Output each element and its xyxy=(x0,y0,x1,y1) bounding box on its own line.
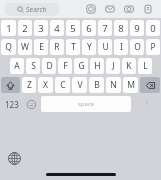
button[interactable]: C xyxy=(55,77,70,93)
button[interactable]: V xyxy=(72,77,87,93)
staticText: B xyxy=(94,79,100,91)
staticText: E xyxy=(39,41,44,53)
button[interactable]: space xyxy=(41,96,131,112)
staticText: 4 xyxy=(54,22,60,35)
staticText: S xyxy=(31,60,36,72)
button[interactable]: 3 xyxy=(34,20,48,36)
staticText: space xyxy=(78,100,95,108)
button[interactable]: 9 xyxy=(130,20,144,36)
button[interactable]: Camera xyxy=(123,3,135,15)
staticText: 6 xyxy=(86,22,92,35)
staticText: N xyxy=(110,79,117,91)
staticText: C xyxy=(60,79,66,91)
button[interactable]: 5 xyxy=(66,20,80,36)
staticText: K xyxy=(126,60,132,72)
staticText: A xyxy=(14,60,20,72)
button[interactable]: U xyxy=(98,39,112,55)
staticText: M xyxy=(127,79,135,91)
staticText: 2 xyxy=(22,22,28,35)
staticText: H xyxy=(94,60,101,72)
button[interactable]: I xyxy=(114,39,128,55)
staticText: Z xyxy=(27,79,32,91)
staticText: D xyxy=(46,60,53,72)
button[interactable]: M xyxy=(123,77,138,93)
staticText: R xyxy=(54,41,60,53)
button[interactable]: Y xyxy=(82,39,96,55)
button[interactable]: Shift xyxy=(1,77,20,93)
button[interactable]: 8 xyxy=(114,20,128,36)
button[interactable]: D xyxy=(42,58,56,74)
staticText: J xyxy=(112,60,115,72)
staticText: Y xyxy=(87,41,92,53)
staticText: X xyxy=(43,79,48,91)
staticText: 0 xyxy=(150,22,156,35)
staticText: P xyxy=(150,41,156,53)
button[interactable]: 4 xyxy=(50,20,64,36)
button[interactable]: G xyxy=(74,58,88,74)
button[interactable]: Sticker xyxy=(85,3,97,15)
button[interactable]: Emoji xyxy=(24,96,39,112)
button[interactable]: F xyxy=(58,58,72,74)
staticText: Search xyxy=(26,5,47,14)
staticText: 5 xyxy=(70,22,76,35)
button[interactable]: B xyxy=(89,77,104,93)
staticText: T xyxy=(71,41,76,53)
staticText: V xyxy=(77,79,83,91)
button[interactable]: R xyxy=(50,39,64,55)
button[interactable]: Clipboard xyxy=(142,3,154,15)
button[interactable]: Search xyxy=(4,3,60,16)
button[interactable]: K xyxy=(122,58,136,74)
staticText: 9 xyxy=(134,22,140,35)
button[interactable]: L xyxy=(138,58,152,74)
staticText: 8 xyxy=(118,22,124,35)
button[interactable]: S xyxy=(26,58,40,74)
staticText: 3 xyxy=(38,22,44,35)
button[interactable]: J xyxy=(106,58,120,74)
button[interactable]: H xyxy=(90,58,104,74)
staticText: I xyxy=(120,41,123,53)
button[interactable]: O xyxy=(130,39,144,55)
button[interactable]: E xyxy=(34,39,48,55)
staticText: L xyxy=(143,60,148,72)
button[interactable]: 0 xyxy=(146,20,160,36)
staticText: G xyxy=(78,60,85,72)
button[interactable]: Change keyboard language xyxy=(6,150,22,166)
staticText: 7 xyxy=(102,22,108,35)
staticText: O xyxy=(134,41,141,53)
button[interactable]: T xyxy=(66,39,80,55)
button[interactable]: Delete xyxy=(140,77,160,93)
button[interactable]: 2 xyxy=(18,20,32,36)
button[interactable]: 123 xyxy=(1,96,22,112)
button[interactable]: Mail xyxy=(104,3,116,15)
button[interactable]: Q xyxy=(1,39,16,55)
staticText: W xyxy=(21,41,29,53)
staticText: U xyxy=(102,41,109,53)
button[interactable]: 1 xyxy=(1,20,16,36)
staticText: 1 xyxy=(6,22,12,35)
staticText: Q xyxy=(5,41,12,53)
button[interactable]: X xyxy=(38,77,53,93)
button[interactable]: 7 xyxy=(98,20,112,36)
button[interactable]: W xyxy=(18,39,32,55)
button[interactable]: 6 xyxy=(82,20,96,36)
button[interactable]: N xyxy=(106,77,121,93)
button[interactable]: P xyxy=(146,39,160,55)
staticText: F xyxy=(63,60,68,72)
button[interactable]: A xyxy=(10,58,24,74)
staticText: 123 xyxy=(5,99,19,110)
button[interactable]: Z xyxy=(22,77,36,93)
